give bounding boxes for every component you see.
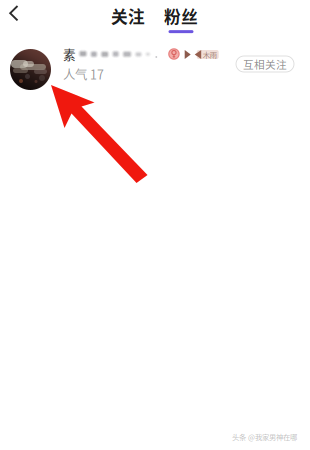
button[interactable]: 粉丝 <box>165 0 197 36</box>
button[interactable]: 素 <box>0 36 310 94</box>
staticText: 素 <box>63 45 76 63</box>
staticText: 互相关注 <box>243 56 287 72</box>
staticText: 头条 @我家男神在哪 <box>232 431 297 442</box>
button[interactable]: Back <box>0 0 34 32</box>
button[interactable]: 关注 <box>112 0 144 36</box>
staticText: 人气 17 <box>63 65 104 83</box>
staticText: 关注 <box>111 4 145 28</box>
staticText: 粉丝 <box>164 4 198 28</box>
staticText: 木雨 <box>203 49 217 60</box>
